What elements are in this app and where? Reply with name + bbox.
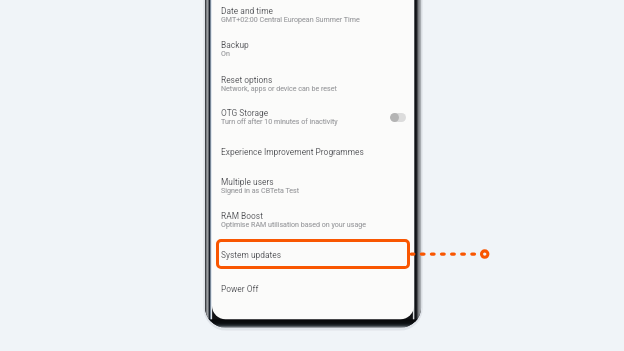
button[interactable]: Power Off [212, 276, 414, 297]
button[interactable]: System updates highlight [216, 239, 410, 269]
staticText: Signed in as CBTeta Test [221, 186, 300, 194]
staticText: RAM Boost [221, 211, 263, 221]
button[interactable]: System updates [212, 242, 414, 263]
staticText: Experience Improvement Programmes [221, 147, 364, 157]
staticText: Turn off after 10 minutes of inactivity [221, 117, 338, 125]
staticText: Optimise RAM utilisation based on your u… [221, 220, 367, 228]
button[interactable]: RAM Boost [212, 203, 414, 230]
staticText: Reset options [221, 75, 273, 85]
button[interactable]: OTG Storage toggle, off [390, 113, 406, 122]
staticText: Date and time [221, 6, 273, 16]
button[interactable]: Backup [212, 32, 414, 59]
button[interactable]: OTG Storage [212, 100, 414, 127]
staticText: Power Off [221, 284, 259, 294]
button[interactable]: Experience Improvement Programmes [212, 139, 414, 160]
button[interactable]: Date and time [212, 0, 414, 25]
staticText: Backup [221, 40, 249, 50]
staticText: GMT+02:00 Central European Summer Time [221, 15, 360, 23]
button[interactable]: Multiple users [212, 169, 414, 196]
staticText: Network, apps or device can be reset [221, 84, 337, 92]
staticText: Multiple users [221, 177, 274, 187]
staticText: System updates [221, 250, 282, 260]
button[interactable]: Reset options [212, 67, 414, 94]
staticText: OTG Storage [221, 108, 269, 118]
staticText: On [221, 49, 230, 57]
